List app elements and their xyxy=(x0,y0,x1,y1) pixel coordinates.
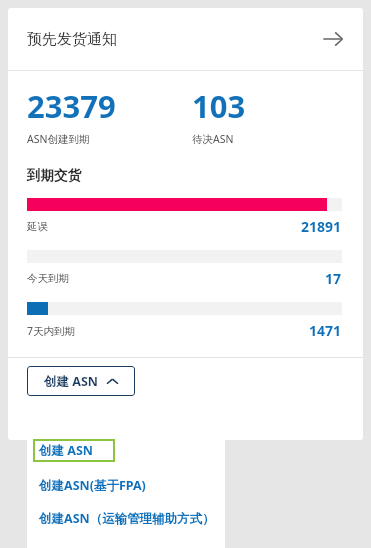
staticText: 预先发货通知 xyxy=(27,30,117,49)
button[interactable]: Open advanced shipping notice xyxy=(319,25,347,53)
staticText: 21891 xyxy=(301,217,342,236)
staticText: 103 xyxy=(192,85,246,127)
staticText: 今天到期 xyxy=(27,272,69,285)
button[interactable]: 创建 ASN xyxy=(27,366,135,396)
staticText: 创建ASN（运输管理辅助方式） xyxy=(39,510,215,527)
staticText: 创建 ASN xyxy=(44,373,98,390)
staticText: 到期交货 xyxy=(27,167,81,184)
staticText: 待决ASN xyxy=(192,132,234,146)
staticText: 创建 ASN xyxy=(39,442,93,459)
button[interactable]: 预先发货通知 xyxy=(8,8,363,70)
staticText: 23379 xyxy=(27,85,116,127)
staticText: 延误 xyxy=(27,220,48,233)
staticText: 7天内到期 xyxy=(27,324,76,338)
staticText: ASN创建到期 xyxy=(27,132,90,146)
staticText: 创建ASN(基于FPA) xyxy=(39,477,146,494)
staticText: 17 xyxy=(325,269,342,288)
button[interactable]: 创建ASN(基于FPA) xyxy=(27,473,225,497)
button[interactable]: 创建ASN（运输管理辅助方式） xyxy=(27,506,225,530)
button[interactable]: 创建 ASN xyxy=(33,439,115,462)
staticText: 1471 xyxy=(309,321,342,340)
